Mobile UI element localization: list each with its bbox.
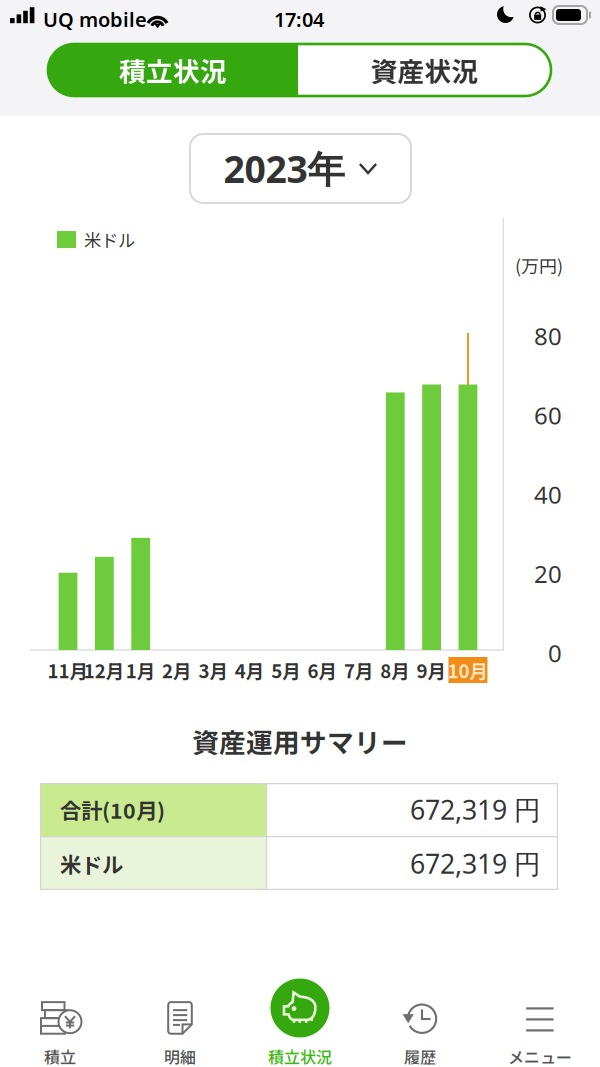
staticText: UQ mobile bbox=[43, 6, 147, 33]
staticText: 1月 bbox=[126, 656, 156, 683]
staticText: 3月 bbox=[198, 656, 228, 683]
staticText: 40 bbox=[534, 479, 562, 510]
staticText: 17:04 bbox=[274, 6, 324, 33]
staticText: 4月 bbox=[235, 656, 265, 683]
staticText: 60 bbox=[534, 399, 562, 431]
staticText: 0 bbox=[548, 637, 562, 669]
staticText: 明細 bbox=[164, 1045, 196, 1067]
staticText: 積立 bbox=[44, 1045, 76, 1067]
staticText: 米ドル bbox=[60, 848, 123, 879]
staticText: 11月 bbox=[47, 656, 88, 683]
button[interactable]: 資産状況 bbox=[298, 44, 551, 96]
staticText: 12月 bbox=[84, 656, 125, 683]
staticText: 80 bbox=[534, 320, 562, 352]
staticText: 合計(10月) bbox=[60, 794, 165, 825]
staticText: 履歴 bbox=[404, 1045, 436, 1067]
button[interactable]: 積立 bbox=[0, 988, 120, 1067]
staticText: 6月 bbox=[307, 656, 337, 683]
staticText: (万円) bbox=[515, 252, 563, 278]
button[interactable]: 2023年 bbox=[190, 134, 411, 203]
staticText: 2月 bbox=[162, 656, 192, 683]
staticText: 積立状況 bbox=[119, 51, 227, 89]
button[interactable]: 積立状況 bbox=[48, 44, 298, 96]
staticText: 9月 bbox=[417, 656, 447, 683]
staticText: 資産状況 bbox=[370, 51, 478, 89]
button[interactable]: 積立状況 bbox=[240, 988, 360, 1067]
button[interactable]: 明細 bbox=[120, 988, 240, 1067]
staticText: 10月 bbox=[447, 656, 488, 683]
button[interactable]: 積立状況 bbox=[260, 968, 340, 1048]
staticText: メニュー bbox=[508, 1045, 572, 1067]
staticText: 米ドル bbox=[84, 227, 135, 252]
staticText: 5月 bbox=[271, 656, 301, 683]
button[interactable]: 履歴 bbox=[360, 988, 480, 1067]
staticText: 672,319 円 bbox=[410, 792, 541, 827]
button[interactable]: メニュー bbox=[480, 988, 600, 1067]
staticText: 資産運用サマリー bbox=[192, 722, 408, 760]
staticText: 20 bbox=[534, 558, 562, 590]
staticText: 積立状況 bbox=[268, 1045, 332, 1067]
staticText: 7月 bbox=[344, 656, 374, 683]
staticText: 672,319 円 bbox=[410, 846, 541, 881]
staticText: 2023年 bbox=[223, 144, 344, 193]
staticText: 8月 bbox=[380, 656, 410, 683]
